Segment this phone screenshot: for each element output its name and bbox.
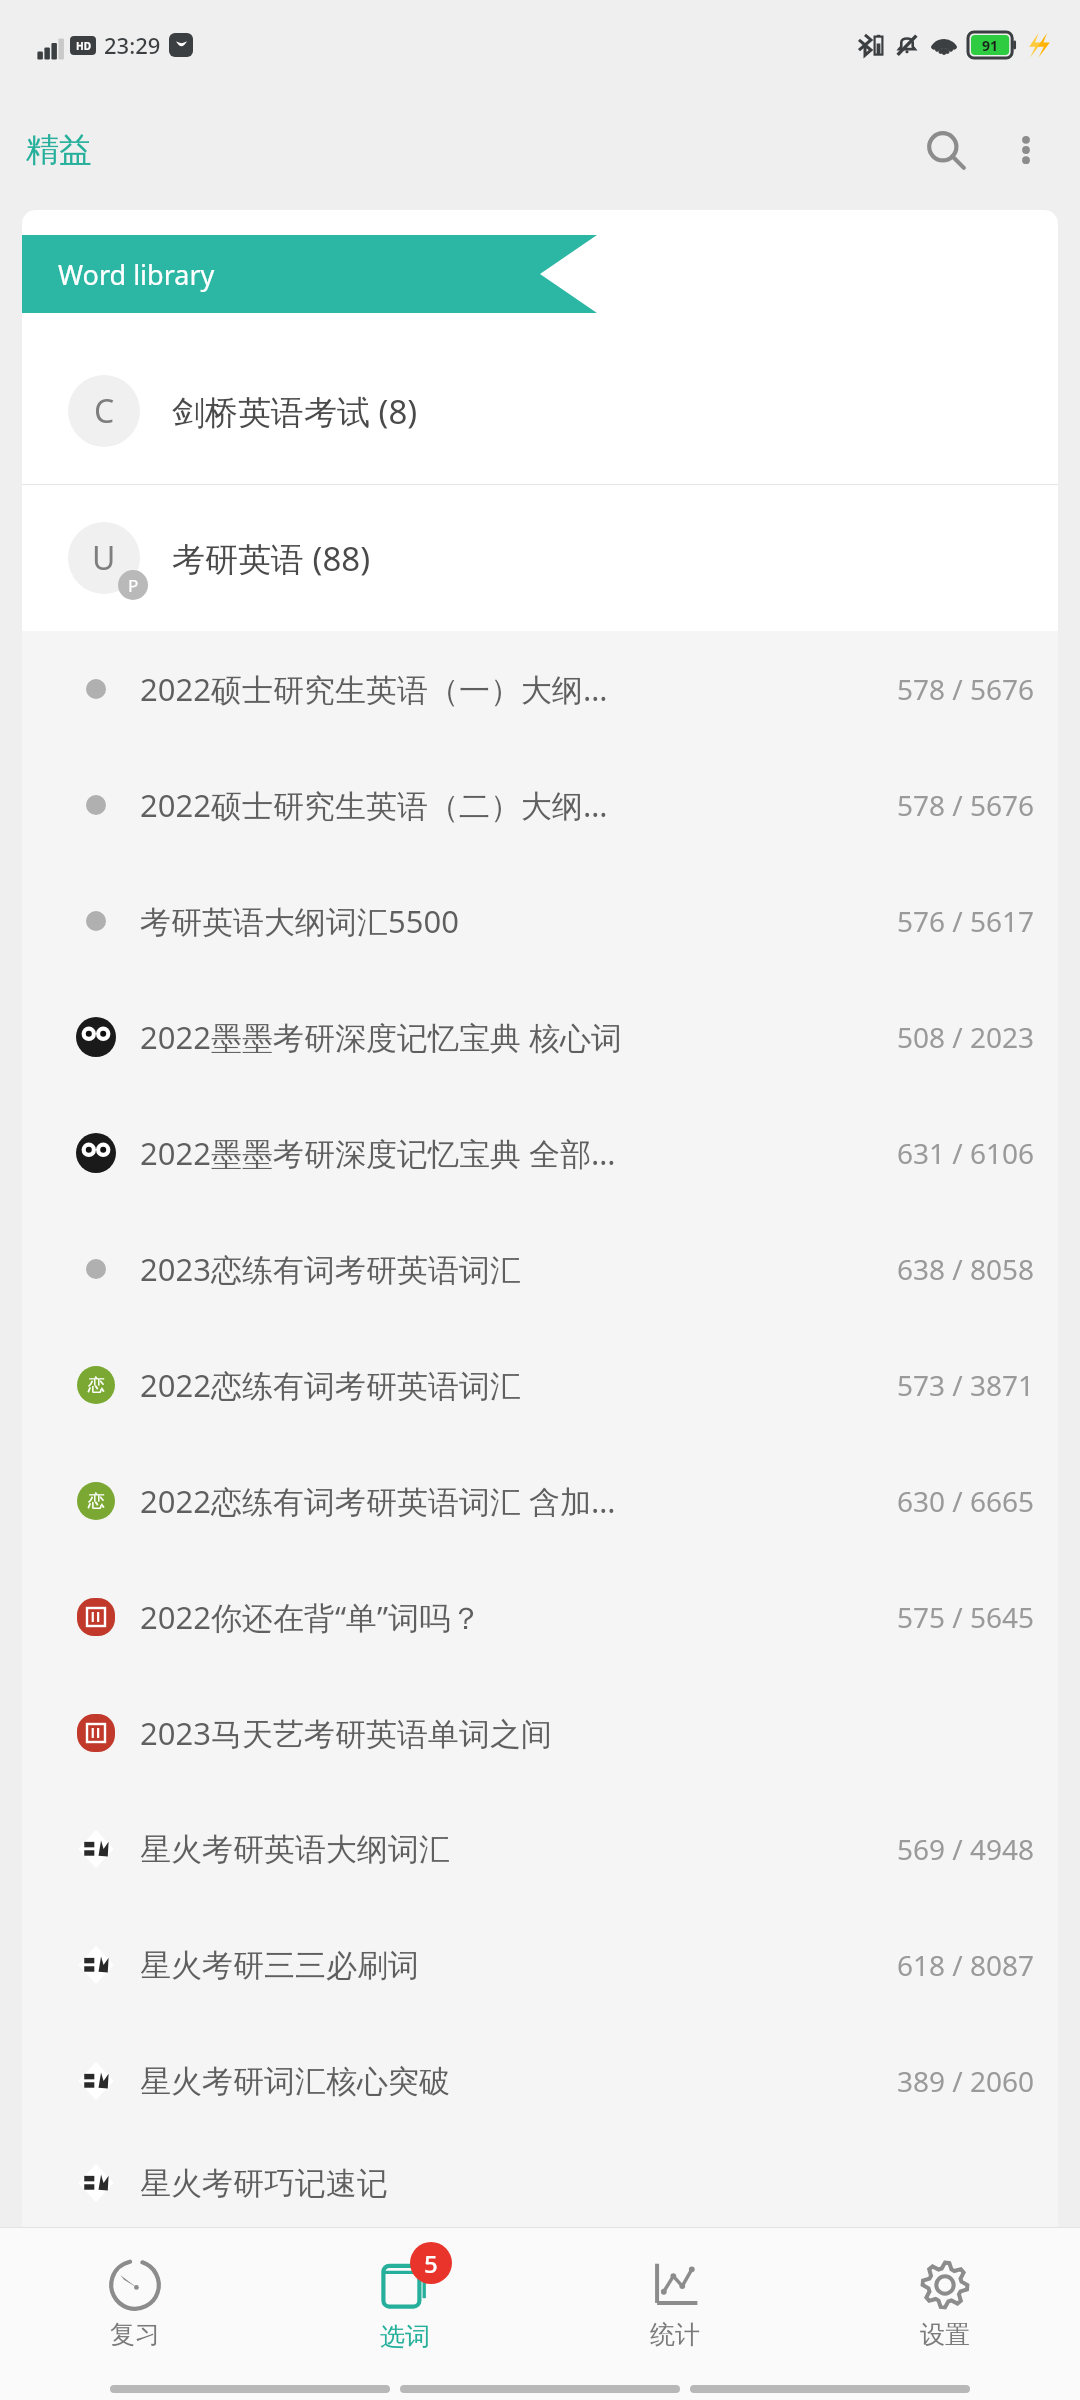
button[interactable]: 恋 [22, 1327, 1058, 1443]
staticText: 23:29 [104, 30, 161, 60]
staticText: 2022硕士研究生英语（一）大纲… [140, 668, 882, 710]
button[interactable]: More options [986, 110, 1066, 190]
staticText: 508 / 2023 [896, 1018, 1034, 1056]
staticText: 569 / 4948 [896, 1830, 1034, 1868]
staticText: 恋 [88, 1491, 105, 1512]
button[interactable]: 2022墨墨考研深度记忆宝典 核心词 [22, 979, 1058, 1095]
button[interactable]: 设置 [810, 2228, 1080, 2378]
staticText: 2022你还在背“单”词吗？ [140, 1596, 882, 1638]
button[interactable]: 恋 [22, 1443, 1058, 1559]
staticText: 2022恋练有词考研英语词汇 含加… [140, 1480, 882, 1522]
button[interactable]: 星火考研英语大纲词汇 [22, 1791, 1058, 1907]
staticText: 考研英语 (88) [172, 536, 371, 581]
button[interactable]: U [22, 485, 1058, 631]
staticText: 631 / 6106 [896, 1134, 1034, 1172]
staticText: 复习 [110, 2319, 160, 2350]
staticText: 星火考研巧记速记 [140, 2164, 1034, 2203]
staticText: 638 / 8058 [896, 1250, 1034, 1288]
button[interactable]: 2023恋练有词考研英语词汇 [22, 1211, 1058, 1327]
staticText: 630 / 6665 [896, 1482, 1034, 1520]
button[interactable]: 星火考研巧记速记 [22, 2139, 1058, 2227]
staticText: Word library [58, 256, 215, 293]
staticText: 考研英语大纲词汇5500 [140, 900, 882, 942]
staticText: HD [76, 39, 91, 53]
staticText: 573 / 3871 [896, 1366, 1034, 1404]
button[interactable]: 2022硕士研究生英语（一）大纲… [22, 631, 1058, 747]
staticText: C [94, 389, 115, 433]
staticText: 2022墨墨考研深度记忆宝典 核心词 [140, 1016, 882, 1058]
staticText: P [128, 574, 139, 597]
button[interactable]: Search [906, 110, 986, 190]
staticText: U [92, 536, 116, 580]
staticText: 星火考研词汇核心突破 [140, 2062, 882, 2101]
staticText: 5 [424, 2247, 438, 2280]
button[interactable]: 星火考研词汇核心突破 [22, 2023, 1058, 2139]
button[interactable]: 2023马天艺考研英语单词之间 [22, 1675, 1058, 1791]
button[interactable]: 考研英语大纲词汇5500 [22, 863, 1058, 979]
button[interactable]: 2022你还在背“单”词吗？ [22, 1559, 1058, 1675]
staticText: 统计 [650, 2319, 700, 2350]
staticText: 575 / 5645 [896, 1598, 1034, 1636]
staticText: 2023马天艺考研英语单词之间 [140, 1712, 1034, 1754]
staticText: 576 / 5617 [896, 902, 1034, 940]
button[interactable]: 2022墨墨考研深度记忆宝典 全部… [22, 1095, 1058, 1211]
button[interactable]: 复习 [0, 2228, 270, 2378]
staticText: 2022硕士研究生英语（二）大纲… [140, 784, 882, 826]
staticText: 91 [982, 36, 999, 55]
staticText: 剑桥英语考试 (8) [172, 389, 418, 434]
button[interactable]: 统计 [540, 2228, 810, 2378]
staticText: 578 / 5676 [896, 786, 1034, 824]
staticText: 设置 [920, 2319, 970, 2350]
button[interactable]: 星火考研三三必刷词 [22, 1907, 1058, 2023]
staticText: 选词 [380, 2321, 430, 2352]
staticText: 618 / 8087 [896, 1946, 1034, 1984]
staticText: 389 / 2060 [896, 2062, 1034, 2100]
button[interactable]: 5 [270, 2228, 540, 2378]
button[interactable]: 2022硕士研究生英语（二）大纲… [22, 747, 1058, 863]
staticText: 星火考研三三必刷词 [140, 1946, 882, 1985]
staticText: 星火考研英语大纲词汇 [140, 1830, 882, 1869]
staticText: 精益 [26, 129, 92, 171]
staticText: 2023恋练有词考研英语词汇 [140, 1248, 882, 1290]
staticText: 2022恋练有词考研英语词汇 [140, 1364, 882, 1406]
staticText: 578 / 5676 [896, 670, 1034, 708]
button[interactable]: C [22, 338, 1058, 484]
staticText: 恋 [88, 1375, 105, 1396]
staticText: 2022墨墨考研深度记忆宝典 全部… [140, 1132, 882, 1174]
